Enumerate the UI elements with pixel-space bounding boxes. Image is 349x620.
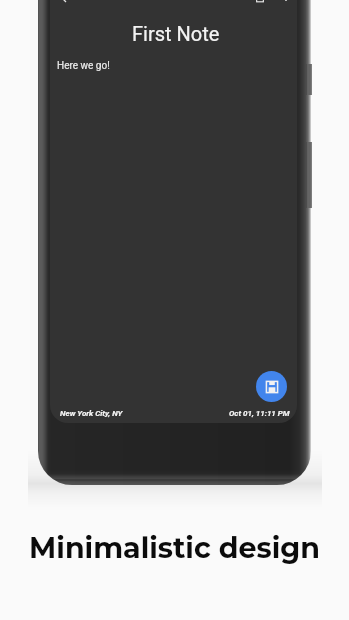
button[interactable]: More options [275, 0, 297, 8]
staticText: Here we go! [57, 60, 110, 72]
button[interactable]: Back [55, 0, 77, 8]
button[interactable]: Delete [249, 0, 271, 8]
button[interactable]: Save note [256, 371, 287, 402]
staticText: Minimalistic design [29, 530, 320, 565]
staticText: Oct 01, 11:11 PM [229, 409, 290, 418]
staticText: New York City, NY [60, 409, 123, 418]
staticText: First Note [132, 22, 220, 45]
